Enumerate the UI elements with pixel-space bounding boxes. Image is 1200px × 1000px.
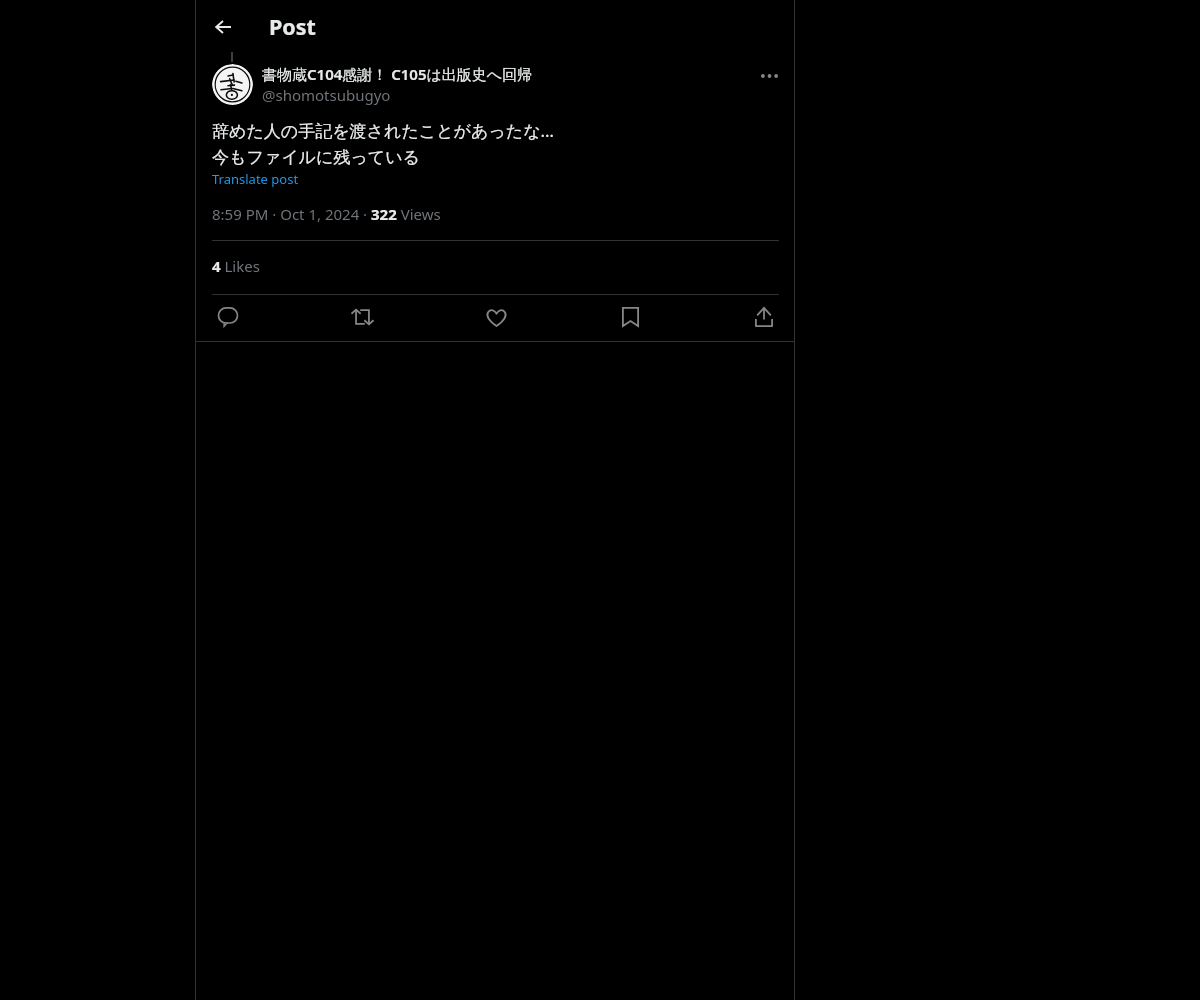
button[interactable]: More options [752, 59, 786, 93]
staticText: Post [269, 15, 316, 41]
button[interactable]: Back [204, 8, 242, 46]
staticText: 4 Likes [212, 256, 260, 276]
button[interactable]: Share [749, 302, 779, 332]
button[interactable]: Like [481, 302, 511, 332]
button[interactable]: 4 Likes [212, 241, 779, 294]
button[interactable]: Repost [347, 302, 377, 332]
staticText: @shomotsubugyo [262, 85, 391, 105]
button[interactable]: Translate post [212, 170, 299, 188]
staticText: 8:59 PM · Oct 1, 2024 · 322 Views [212, 204, 441, 224]
staticText: Translate post [212, 170, 299, 188]
button[interactable]: Bookmark [615, 302, 645, 332]
button[interactable]: Reply [213, 302, 243, 332]
staticText: 辞めた人の手記を渡されたことがあったな… 今もファイルに残っている [212, 117, 555, 170]
staticText: 書物蔵C104感謝！ C105は出版史へ回帰 [262, 66, 533, 85]
button[interactable]: Profile picture [212, 64, 253, 105]
